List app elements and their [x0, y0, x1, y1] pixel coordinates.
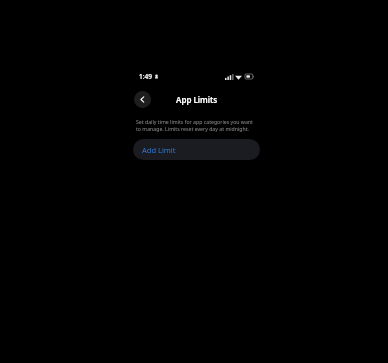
staticText: Add Limit	[142, 145, 176, 155]
button[interactable]: Back	[134, 91, 151, 108]
staticText: App Limits	[176, 94, 218, 105]
button[interactable]: Add Limit	[133, 139, 260, 160]
staticText: Set daily time limits for app categories…	[136, 118, 257, 132]
staticText: 1:49	[139, 72, 152, 81]
